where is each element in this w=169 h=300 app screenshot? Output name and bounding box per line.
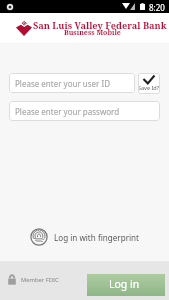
button[interactable]: Save Id <box>138 73 160 94</box>
staticText: Member FDIC <box>21 276 59 284</box>
button[interactable]: Log in with fingerprint <box>0 228 169 246</box>
staticText: San Luis Valley Federal Bank <box>33 19 167 32</box>
staticText: Please enter your user ID <box>15 78 111 89</box>
staticText: Log in with fingerprint <box>54 232 139 243</box>
button[interactable]: Please enter your password <box>9 101 160 121</box>
staticText: Save Id? <box>138 84 160 91</box>
button[interactable]: Please enter your user ID <box>9 73 135 93</box>
button[interactable]: Log in <box>87 274 165 296</box>
staticText: Business Mobile <box>64 28 121 38</box>
staticText: Please enter your password <box>15 106 120 117</box>
staticText: Log in <box>109 277 140 291</box>
staticText: 8:20 <box>149 2 165 13</box>
